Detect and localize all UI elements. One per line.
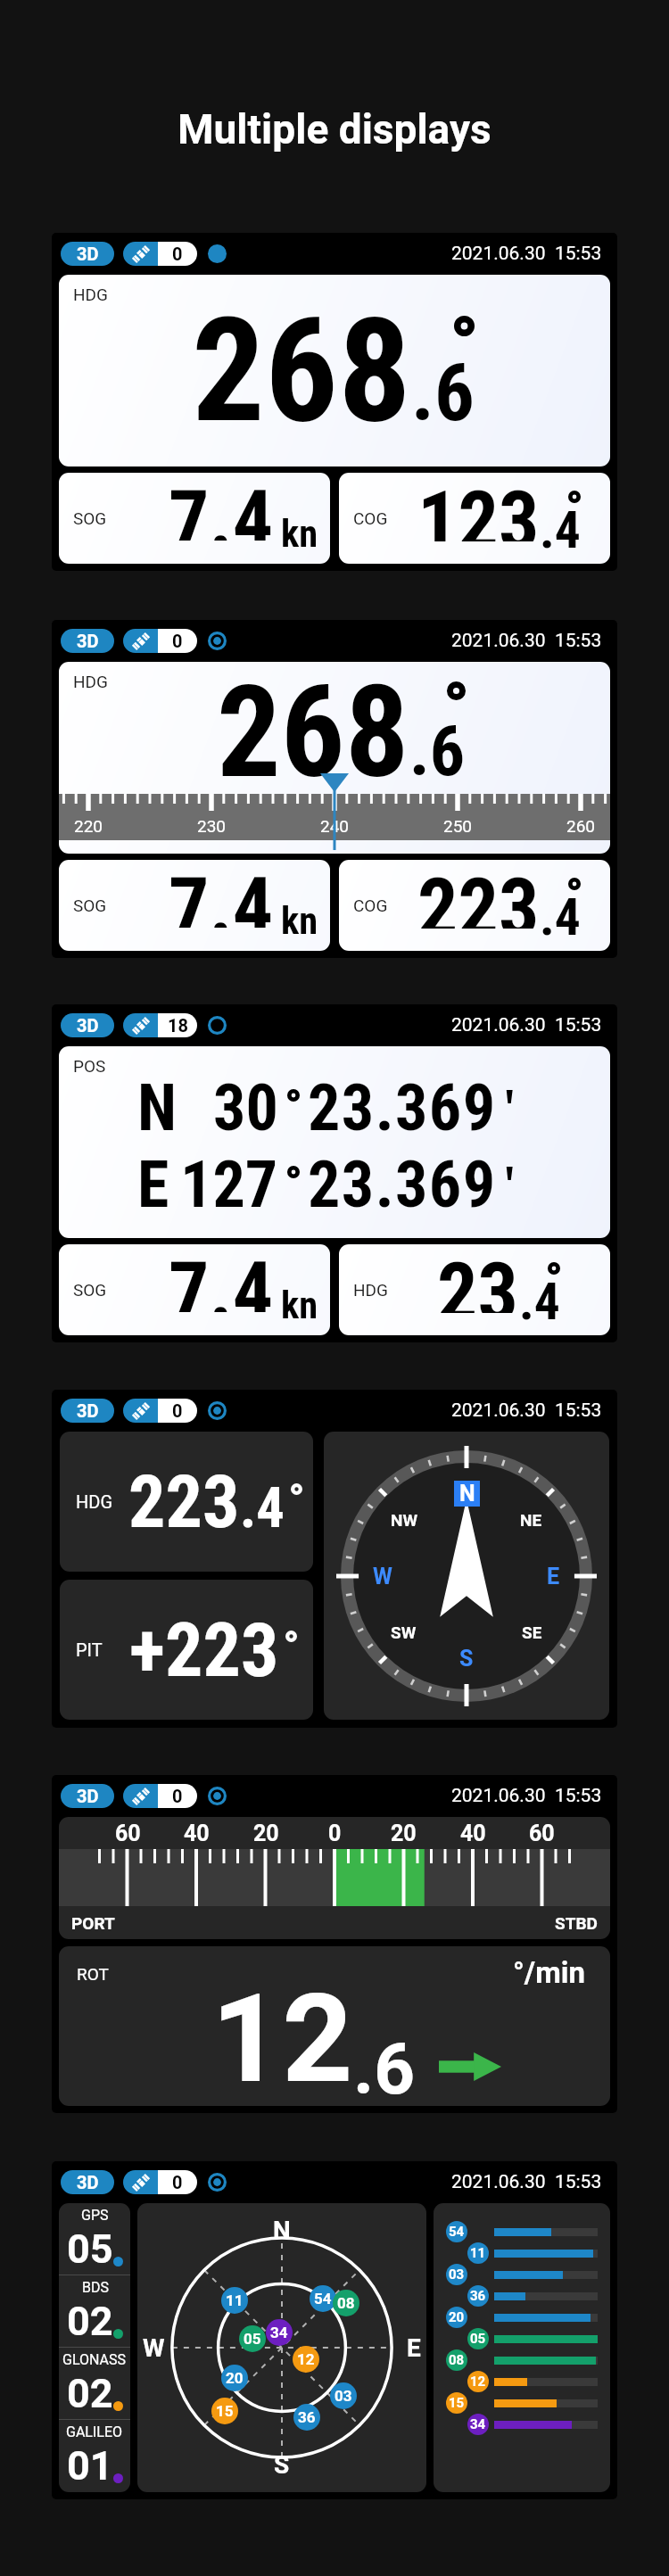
- staticText: 7.4: [169, 474, 274, 541]
- staticText: 36: [298, 2408, 316, 2426]
- button[interactable]: GNSS fix status: [208, 1787, 227, 1805]
- button[interactable]: SOG: [59, 1244, 330, 1335]
- button[interactable]: HDG: [59, 662, 610, 854]
- staticText: 23.369: [308, 1070, 497, 1145]
- button[interactable]: POS: [59, 1046, 610, 1238]
- staticText: N: [459, 1481, 475, 1507]
- button[interactable]: 3D: [61, 2170, 114, 2194]
- staticText: E: [407, 2333, 421, 2363]
- staticText: 2021.06.30 15:53: [451, 1785, 602, 1807]
- button[interactable]: 0: [123, 629, 197, 653]
- button[interactable]: 60: [59, 1817, 610, 1939]
- button[interactable]: ROT: [59, 1946, 610, 2106]
- staticText: GALILEO: [66, 2423, 123, 2440]
- staticText: HDG: [76, 1491, 113, 1512]
- staticText: 12: [470, 2374, 486, 2390]
- staticText: 12: [211, 1967, 353, 2106]
- staticText: E: [547, 1564, 560, 1589]
- button[interactable]: GNSS fix status: [208, 632, 227, 650]
- button[interactable]: GNSS fix status: [208, 244, 227, 263]
- button[interactable]: 54: [434, 2203, 610, 2492]
- button[interactable]: 3D: [61, 242, 114, 266]
- staticText: 34: [470, 2416, 486, 2432]
- staticText: 02: [67, 2298, 113, 2345]
- staticText: 20: [253, 1821, 279, 1846]
- button[interactable]: GPS: [59, 2203, 130, 2492]
- staticText: 2021.06.30 15:53: [451, 1014, 602, 1036]
- staticText: 2021.06.30 15:53: [451, 1399, 602, 1422]
- button[interactable]: COG: [339, 473, 610, 564]
- staticText: 05: [67, 2225, 113, 2273]
- button[interactable]: SOG: [59, 473, 330, 564]
- button[interactable]: N: [324, 1432, 609, 1720]
- staticText: 0: [172, 2172, 183, 2192]
- staticText: E: [137, 1147, 169, 1222]
- staticText: 268: [192, 286, 411, 434]
- staticText: 250: [443, 816, 473, 836]
- staticText: 23: [437, 1246, 519, 1313]
- button[interactable]: 3D: [61, 1013, 114, 1037]
- button[interactable]: HDG: [339, 1244, 610, 1335]
- staticText: 08: [337, 2294, 355, 2312]
- staticText: 260: [566, 816, 596, 836]
- staticText: 223: [128, 1459, 240, 1545]
- staticText: PIT: [76, 1639, 103, 1660]
- staticText: 223: [417, 862, 540, 929]
- staticText: ROT: [77, 1964, 109, 1984]
- staticText: .6: [353, 2027, 416, 2106]
- button[interactable]: 0: [123, 2170, 197, 2194]
- button[interactable]: GNSS fix status: [208, 2173, 227, 2192]
- staticText: 23.369: [308, 1147, 497, 1222]
- staticText: 15: [216, 2402, 234, 2420]
- staticText: W: [373, 1564, 392, 1589]
- staticText: 3D: [77, 244, 99, 264]
- staticText: .4: [240, 1475, 285, 1540]
- staticText: .4: [540, 500, 581, 561]
- staticText: N: [137, 1070, 178, 1145]
- staticText: 240: [320, 816, 350, 836]
- staticText: 03: [334, 2387, 352, 2405]
- staticText: kn: [281, 1284, 318, 1328]
- staticText: STBD: [555, 1913, 598, 1933]
- staticText: 0: [172, 1786, 183, 1806]
- staticText: 0: [172, 1400, 183, 1421]
- button[interactable]: GNSS fix status: [208, 1016, 227, 1035]
- staticText: kn: [281, 899, 318, 944]
- staticText: 20: [391, 1821, 417, 1846]
- staticText: 03: [449, 2266, 465, 2283]
- button[interactable]: SOG: [59, 860, 330, 951]
- staticText: NE: [520, 1510, 542, 1530]
- button[interactable]: N: [137, 2203, 426, 2492]
- button[interactable]: 3D: [61, 1784, 114, 1808]
- staticText: 3D: [77, 1786, 99, 1806]
- staticText: POS: [73, 1056, 106, 1076]
- staticText: SOG: [73, 1280, 107, 1300]
- staticText: 3D: [77, 631, 99, 651]
- button[interactable]: HDG: [59, 275, 610, 466]
- button[interactable]: 3D: [61, 1399, 114, 1423]
- staticText: 0: [172, 244, 183, 264]
- staticText: 40: [460, 1821, 486, 1846]
- button[interactable]: COG: [339, 860, 610, 951]
- button[interactable]: HDG: [60, 1432, 313, 1572]
- staticText: HDG: [353, 1280, 388, 1300]
- staticText: .4: [540, 888, 581, 948]
- button[interactable]: 0: [123, 1399, 197, 1423]
- button[interactable]: 0: [123, 242, 197, 266]
- staticText: 268: [217, 662, 409, 806]
- staticText: HDG: [73, 285, 108, 304]
- button[interactable]: 3D: [61, 629, 114, 653]
- staticText: Multiple displays: [0, 105, 669, 153]
- button[interactable]: 18: [123, 1013, 197, 1037]
- staticText: 3D: [77, 1400, 99, 1421]
- staticText: +223: [129, 1606, 279, 1694]
- staticText: 54: [314, 2290, 332, 2308]
- button[interactable]: 0: [123, 1784, 197, 1808]
- button[interactable]: PIT: [60, 1580, 313, 1720]
- staticText: 05: [470, 2331, 486, 2347]
- staticText: 7.4: [169, 1245, 274, 1312]
- staticText: 18: [168, 1015, 188, 1036]
- button[interactable]: GNSS fix status: [208, 1401, 227, 1420]
- staticText: SW: [391, 1622, 417, 1642]
- staticText: N: [273, 2216, 291, 2245]
